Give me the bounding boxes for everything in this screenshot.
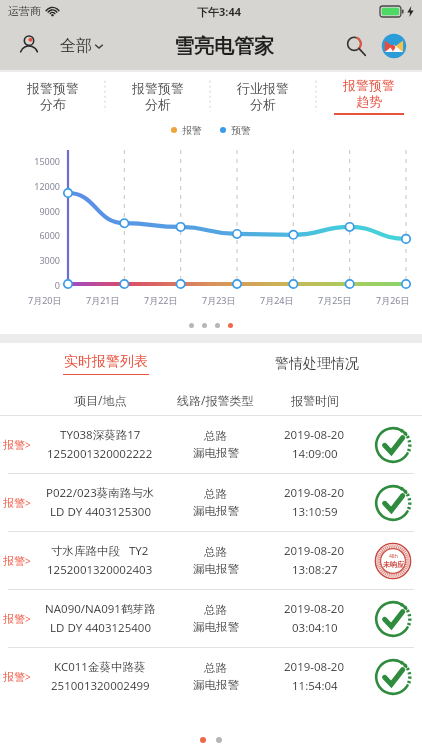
staticText: 雪亮电管家 (174, 34, 274, 59)
staticText: 13:10:59 (292, 504, 338, 520)
staticText: > (25, 670, 31, 684)
staticText: 报警 (182, 124, 202, 137)
staticText: 总路 (204, 487, 227, 501)
staticText: TY038深葵路17 (60, 427, 141, 443)
staticText: > (25, 612, 31, 626)
staticText: 9000 (12, 205, 60, 217)
staticText: 6000 (12, 229, 60, 241)
other: 已处理 (372, 656, 414, 698)
staticText: 线路/报警类型 (177, 392, 254, 408)
staticText: 14:09:00 (292, 446, 338, 462)
staticText: 03:04:10 (292, 620, 338, 636)
other: 已处理 (372, 424, 414, 466)
staticText: 1252001320002222 (47, 446, 153, 462)
staticText: 7月25日 (318, 294, 352, 306)
button[interactable]: 行业报警 分析 (210, 72, 316, 120)
staticText: 7月23日 (202, 294, 236, 306)
staticText: 漏电报警 (193, 678, 239, 692)
staticText: 2019-08-20 (284, 485, 345, 501)
staticText: 行业报警 分析 (237, 80, 289, 113)
staticText: 2019-08-20 (284, 659, 345, 675)
button[interactable]: 报警 (0, 532, 422, 589)
button[interactable]: 报警预警 分析 (105, 72, 210, 120)
staticText: 报警预警 分布 (27, 80, 79, 113)
staticText: 1252001320002403 (47, 562, 153, 578)
button[interactable]: 报警 (0, 590, 422, 647)
staticText: 7月20日 (28, 294, 62, 306)
staticText: > (25, 496, 31, 510)
button[interactable]: 报警预警 分布 (0, 72, 105, 120)
staticText: 报警 (3, 670, 25, 684)
staticText: 总路 (204, 545, 227, 559)
button[interactable]: Profile (14, 31, 44, 61)
staticText: 2019-08-20 (284, 543, 345, 559)
staticText: 报警时间 (291, 393, 339, 408)
staticText: > (25, 438, 31, 452)
button[interactable]: Map (378, 30, 410, 62)
staticText: 下午3:44 (197, 4, 241, 19)
staticText: KC011金葵中路葵 (54, 659, 146, 675)
other: 未响应 (372, 540, 414, 582)
staticText: P022/023葵南路与水 (46, 485, 155, 501)
staticText: > (25, 554, 31, 568)
staticText: 运营商 (8, 4, 41, 18)
staticText: 警情处理情况 (275, 355, 359, 373)
staticText: 48h (389, 553, 398, 560)
staticText: 漏电报警 (193, 446, 239, 460)
staticText: 11:54:04 (292, 678, 338, 694)
staticText: 12000 (12, 180, 60, 192)
button[interactable]: 警情处理情况 (211, 343, 422, 385)
staticText: NA090/NA091鹤芽路 (45, 601, 156, 617)
staticText: 251001320002499 (51, 678, 150, 694)
staticText: 总路 (204, 429, 227, 443)
staticText: 总路 (204, 603, 227, 617)
staticText: 报警 (3, 554, 25, 568)
staticText: 寸水库路中段 TY2 (51, 543, 149, 559)
staticText: 3000 (12, 254, 60, 266)
staticText: 未响应 (383, 560, 404, 569)
staticText: 13:08:27 (292, 562, 338, 578)
staticText: 报警预警 分析 (132, 80, 184, 113)
staticText: 7月22日 (144, 294, 178, 306)
staticText: 项目/地点 (74, 392, 127, 408)
button[interactable]: 报警 (0, 648, 422, 705)
staticText: 报警 (3, 438, 25, 452)
staticText: 漏电报警 (193, 620, 239, 634)
staticText: 报警 (3, 612, 25, 626)
staticText: 报警预警 趋势 (343, 77, 395, 110)
staticText: 0 (12, 279, 60, 291)
staticText: LD DY 4403125400 (50, 620, 151, 636)
staticText: 实时报警列表 (64, 353, 148, 371)
button[interactable]: 报警 (0, 474, 422, 531)
staticText: 2019-08-20 (284, 601, 345, 617)
button[interactable]: 报警预警 趋势 (316, 72, 422, 120)
staticText: 漏电报警 (193, 562, 239, 576)
button[interactable]: 报警 (0, 416, 422, 473)
staticText: 15000 (12, 155, 60, 167)
staticText: LD DY 4403125300 (50, 504, 151, 520)
button[interactable]: 全部 (56, 32, 108, 60)
staticText: 7月21日 (86, 294, 120, 306)
staticText: 全部 (60, 36, 92, 56)
other: 已处理 (372, 482, 414, 524)
staticText: 预警 (231, 124, 251, 137)
staticText: 总路 (204, 661, 227, 675)
staticText: 报警 (3, 496, 25, 510)
staticText: 2019-08-20 (284, 427, 345, 443)
button[interactable]: 实时报警列表 (0, 343, 211, 385)
staticText: 漏电报警 (193, 504, 239, 518)
staticText: 7月24日 (260, 294, 294, 306)
other: 已处理 (372, 598, 414, 640)
staticText: 7月26日 (376, 294, 410, 306)
button[interactable]: Search (340, 30, 372, 62)
